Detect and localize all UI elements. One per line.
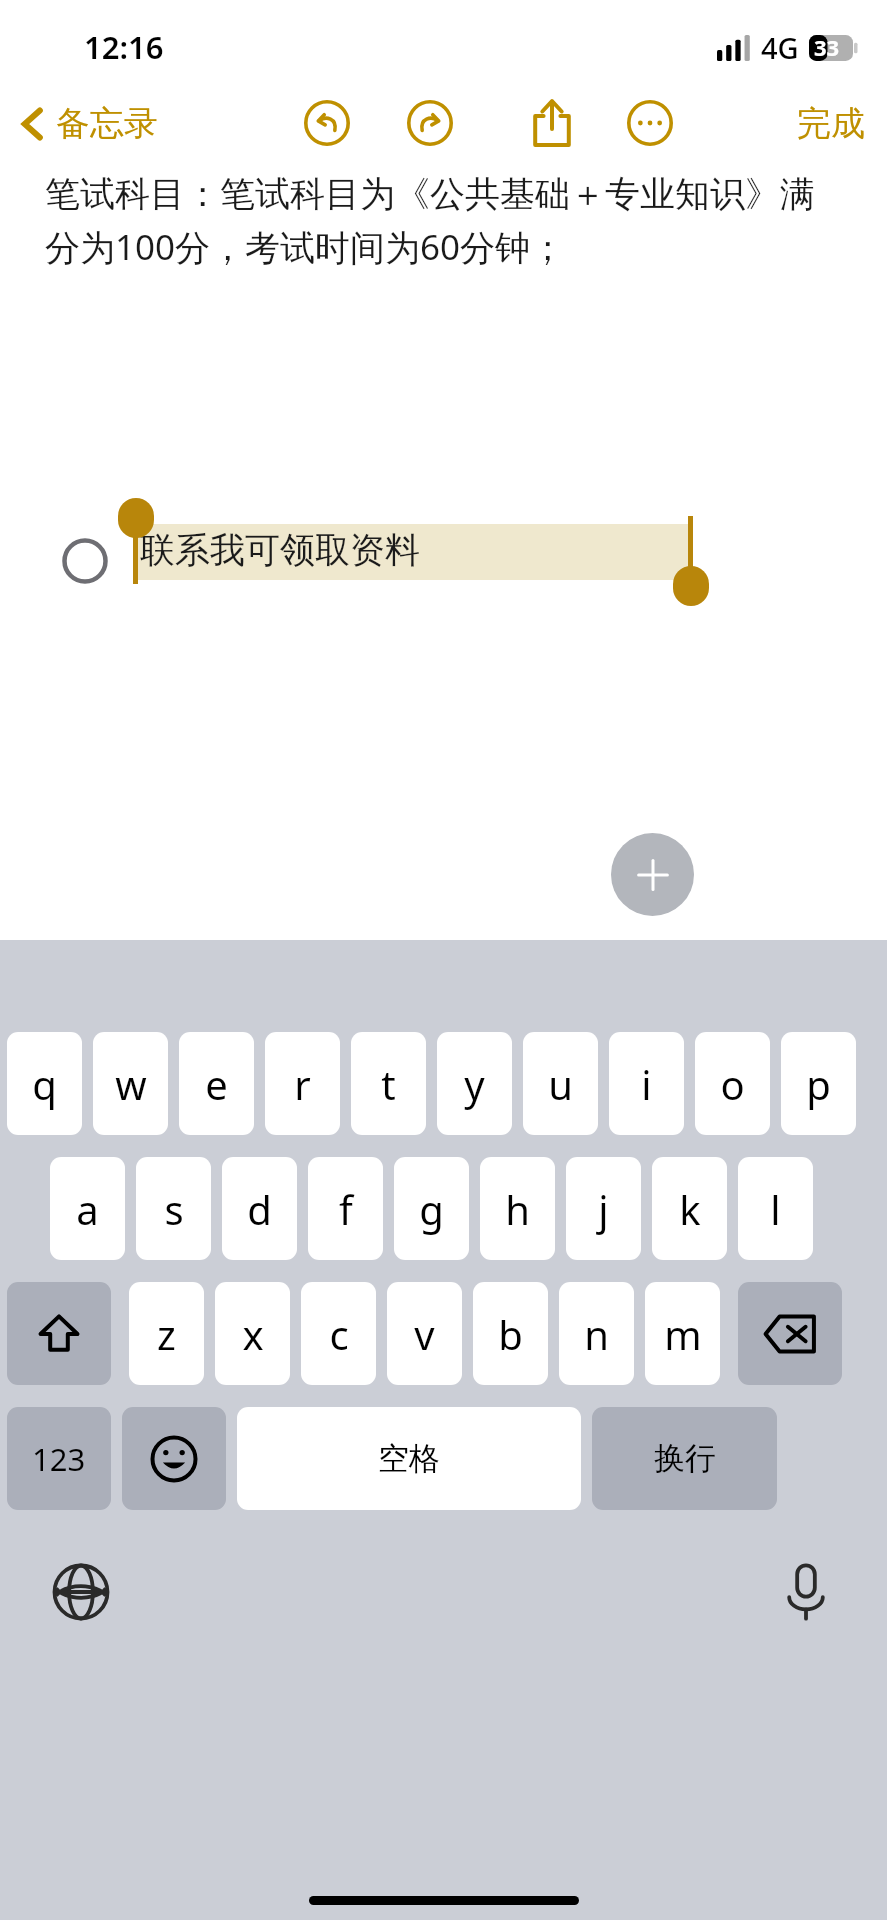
staticText: 换行 (654, 1439, 716, 1478)
staticText: u (548, 1057, 573, 1111)
staticText: c (329, 1307, 349, 1361)
button[interactable]: Emoji (122, 1407, 226, 1510)
button[interactable]: j (566, 1157, 641, 1260)
button[interactable]: t (351, 1032, 426, 1135)
staticText: t (381, 1057, 396, 1111)
button[interactable]: 空格 (237, 1407, 581, 1510)
staticText: 123 (32, 1438, 86, 1480)
staticText: 空格 (378, 1439, 440, 1478)
button[interactable]: q (7, 1032, 82, 1135)
button[interactable]: More options (620, 93, 680, 153)
staticText: h (505, 1182, 530, 1236)
button[interactable]: 备忘录 (18, 102, 158, 145)
staticText: e (205, 1057, 228, 1111)
button[interactable]: Backspace (738, 1282, 842, 1385)
staticText: g (419, 1182, 444, 1236)
button[interactable]: 完成 (797, 102, 865, 145)
button[interactable]: e (179, 1032, 254, 1135)
button[interactable]: Share (521, 92, 583, 154)
button[interactable]: n (559, 1282, 634, 1385)
button[interactable]: y (437, 1032, 512, 1135)
staticText: k (679, 1182, 701, 1236)
staticText: 12:16 (84, 26, 164, 68)
staticText: p (806, 1057, 831, 1111)
button[interactable]: 换行 (592, 1407, 777, 1510)
staticText: r (294, 1057, 311, 1111)
button[interactable]: m (645, 1282, 720, 1385)
staticText: 完成 (797, 102, 865, 145)
button[interactable]: k (652, 1157, 727, 1260)
staticText: w (115, 1057, 147, 1111)
staticText: i (641, 1057, 652, 1111)
button[interactable]: Add (611, 833, 694, 916)
staticText: n (584, 1307, 609, 1361)
button[interactable]: Checklist item (62, 538, 108, 584)
staticText: m (664, 1307, 702, 1361)
button[interactable]: x (215, 1282, 290, 1385)
staticText: q (32, 1057, 57, 1111)
button[interactable]: z (129, 1282, 204, 1385)
staticText: z (157, 1307, 176, 1361)
button[interactable]: o (695, 1032, 770, 1135)
button[interactable]: Shift (7, 1282, 111, 1385)
staticText: f (339, 1182, 353, 1236)
button[interactable]: Redo (400, 93, 460, 153)
staticText: 联系我可领取资料 (140, 528, 420, 572)
button[interactable]: s (136, 1157, 211, 1260)
staticText: y (464, 1057, 485, 1111)
staticText: 33 (814, 32, 840, 62)
staticText: 备忘录 (56, 102, 158, 145)
staticText: x (242, 1307, 264, 1361)
button[interactable]: u (523, 1032, 598, 1135)
staticText: s (164, 1182, 184, 1236)
button[interactable]: Undo (297, 93, 357, 153)
button[interactable]: Dictation (775, 1561, 837, 1623)
button[interactable]: p (781, 1032, 856, 1135)
staticText: v (414, 1307, 435, 1361)
button[interactable]: l (738, 1157, 813, 1260)
staticText: d (247, 1182, 272, 1236)
staticText: j (598, 1182, 609, 1236)
staticText: o (720, 1057, 745, 1111)
button[interactable]: h (480, 1157, 555, 1260)
button[interactable]: b (473, 1282, 548, 1385)
button[interactable]: c (301, 1282, 376, 1385)
button[interactable]: a (50, 1157, 125, 1260)
button[interactable]: w (93, 1032, 168, 1135)
button[interactable]: i (609, 1032, 684, 1135)
button[interactable]: d (222, 1157, 297, 1260)
button[interactable]: 123 (7, 1407, 111, 1510)
staticText: 笔试科目：笔试科目为《公共基础＋专业知识》满分为100分，考试时间为60分钟； (45, 172, 847, 270)
button[interactable]: g (394, 1157, 469, 1260)
staticText: b (498, 1307, 523, 1361)
staticText: l (770, 1182, 781, 1236)
button[interactable]: r (265, 1032, 340, 1135)
staticText: a (76, 1182, 99, 1236)
staticText: 4G (761, 28, 799, 67)
button[interactable]: Change keyboard (50, 1561, 112, 1623)
button[interactable]: f (308, 1157, 383, 1260)
button[interactable]: v (387, 1282, 462, 1385)
